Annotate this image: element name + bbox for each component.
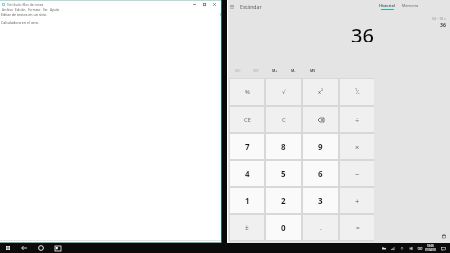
- staticText: Ayuda: [50, 8, 60, 12]
- button[interactable]: Edición: [14, 8, 27, 12]
- button[interactable]: x²: [303, 79, 338, 105]
- staticText: −: [355, 169, 360, 179]
- staticText: +: [355, 196, 360, 206]
- staticText: MS: [310, 68, 316, 73]
- staticText: 4: [245, 168, 250, 179]
- button[interactable]: MS: [303, 65, 322, 76]
- button[interactable]: %: [230, 79, 264, 105]
- button[interactable]: Search: [36, 243, 46, 253]
- staticText: Editar de textos en un sitio.: [1, 12, 47, 17]
- button[interactable]: 7: [230, 134, 264, 159]
- button[interactable]: 2: [266, 188, 301, 213]
- button[interactable]: ¹⁄ₓ: [340, 79, 375, 105]
- staticText: 36: [440, 21, 446, 28]
- button[interactable]: Memoria: [402, 3, 419, 8]
- staticText: 54 − 18 =: [432, 16, 446, 20]
- button[interactable]: ÷: [340, 107, 375, 132]
- staticText: 01/04/18: [425, 248, 436, 252]
- staticText: Calculadora en el otro.: [1, 20, 39, 25]
- staticText: Historial: [379, 3, 395, 8]
- staticText: .: [320, 223, 322, 232]
- button[interactable]: Start: [3, 243, 13, 253]
- button[interactable]: 3: [303, 188, 338, 213]
- staticText: 6: [318, 168, 323, 179]
- button[interactable]: MR: [247, 65, 265, 76]
- button[interactable]: 54 − 18 =: [374, 16, 446, 28]
- staticText: 36: [351, 22, 374, 42]
- button[interactable]: Formato: [27, 8, 42, 12]
- staticText: M+: [272, 68, 278, 73]
- button[interactable]: Back: [19, 243, 29, 253]
- button[interactable]: Clear history: [441, 233, 447, 239]
- staticText: Estándar: [240, 3, 262, 10]
- staticText: MR: [253, 68, 259, 73]
- button[interactable]: −: [340, 161, 375, 186]
- button[interactable]: =: [340, 215, 375, 240]
- button[interactable]: Clock: [425, 244, 436, 252]
- staticText: 2: [281, 195, 286, 206]
- staticText: 18:05: [427, 244, 434, 248]
- button[interactable]: Maximize: [199, 1, 209, 7]
- button[interactable]: Ver: [42, 8, 49, 12]
- button[interactable]: ±: [230, 215, 264, 240]
- staticText: C: [282, 116, 286, 124]
- button[interactable]: ×: [340, 134, 375, 159]
- staticText: 9: [318, 141, 323, 152]
- button[interactable]: Files: [379, 244, 388, 253]
- staticText: 1: [245, 195, 250, 206]
- staticText: Formato: [28, 8, 41, 12]
- button[interactable]: Show hidden icons: [397, 244, 406, 253]
- staticText: Memoria: [402, 3, 419, 8]
- button[interactable]: 9: [303, 134, 338, 159]
- button[interactable]: 0: [266, 215, 301, 240]
- staticText: Ver: [43, 8, 48, 12]
- button[interactable]: MC: [229, 65, 247, 76]
- button[interactable]: CE: [230, 107, 264, 132]
- staticText: 5: [281, 168, 286, 179]
- button[interactable]: C: [266, 107, 301, 132]
- staticText: x²: [318, 88, 324, 96]
- button[interactable]: Close: [209, 1, 219, 7]
- staticText: ÷: [355, 115, 360, 125]
- staticText: 8: [281, 141, 286, 152]
- staticText: 3: [318, 195, 323, 206]
- button[interactable]: +: [340, 188, 375, 213]
- staticText: %: [245, 88, 250, 96]
- button[interactable]: Keyboard: [415, 244, 424, 253]
- staticText: Archivo: [2, 8, 13, 12]
- staticText: 0: [281, 222, 286, 233]
- button[interactable]: Ayuda: [49, 8, 61, 12]
- staticText: M-: [291, 68, 296, 73]
- button[interactable]: 4: [230, 161, 264, 186]
- staticText: =: [356, 223, 360, 232]
- button[interactable]: Archivo: [1, 8, 14, 12]
- staticText: ×: [355, 142, 360, 152]
- button[interactable]: Network: [388, 244, 397, 253]
- staticText: CE: [244, 116, 251, 124]
- button[interactable]: Minimize: [189, 1, 199, 7]
- button[interactable]: M+: [265, 65, 284, 76]
- staticText: ±: [245, 223, 249, 232]
- button[interactable]: 8: [266, 134, 301, 159]
- button[interactable]: Menu: [228, 3, 235, 10]
- button[interactable]: Bluetooth: [406, 244, 415, 253]
- button[interactable]: √: [266, 79, 301, 105]
- button[interactable]: M-: [284, 65, 303, 76]
- button[interactable]: 6: [303, 161, 338, 186]
- button[interactable]: Notifications: [439, 244, 448, 253]
- staticText: Edición: [15, 8, 26, 12]
- staticText: 7: [245, 141, 250, 152]
- button[interactable]: ⌫: [303, 107, 338, 132]
- staticText: ¹⁄ₓ: [355, 88, 360, 96]
- staticText: Sin título: Bloc de notas: [7, 2, 44, 6]
- button[interactable]: 1: [230, 188, 264, 213]
- staticText: MC: [235, 68, 241, 73]
- button[interactable]: Task view: [53, 243, 63, 253]
- button[interactable]: 5: [266, 161, 301, 186]
- button[interactable]: Historial: [379, 3, 395, 10]
- staticText: √: [282, 89, 286, 96]
